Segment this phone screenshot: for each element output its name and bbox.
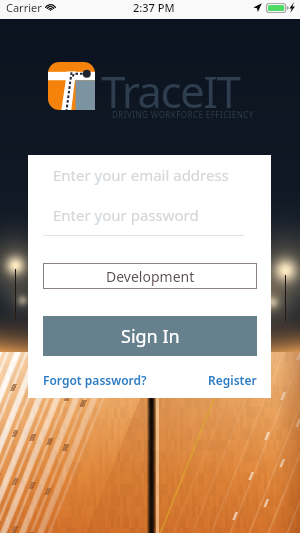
- staticText: Carrier: [6, 0, 42, 15]
- staticText: Enter your email address: [53, 165, 229, 185]
- button[interactable]: Forgot password?: [43, 372, 147, 388]
- button[interactable]: Enter your email address: [53, 158, 255, 191]
- staticText: Development: [106, 267, 195, 286]
- staticText: Enter your password: [53, 205, 199, 225]
- button[interactable]: Enter your password: [53, 198, 255, 231]
- staticText: DRIVING WORKFORCE EFFICIENCY: [112, 109, 254, 120]
- button[interactable]: Register: [208, 372, 257, 388]
- button[interactable]: Development: [43, 263, 257, 289]
- staticText: Forgot password?: [43, 372, 147, 388]
- staticText: 2:37 PM: [133, 0, 175, 15]
- button[interactable]: Sign In: [43, 316, 257, 356]
- staticText: TraceIT: [101, 61, 240, 121]
- staticText: Register: [208, 372, 257, 388]
- staticText: Sign In: [121, 324, 180, 349]
